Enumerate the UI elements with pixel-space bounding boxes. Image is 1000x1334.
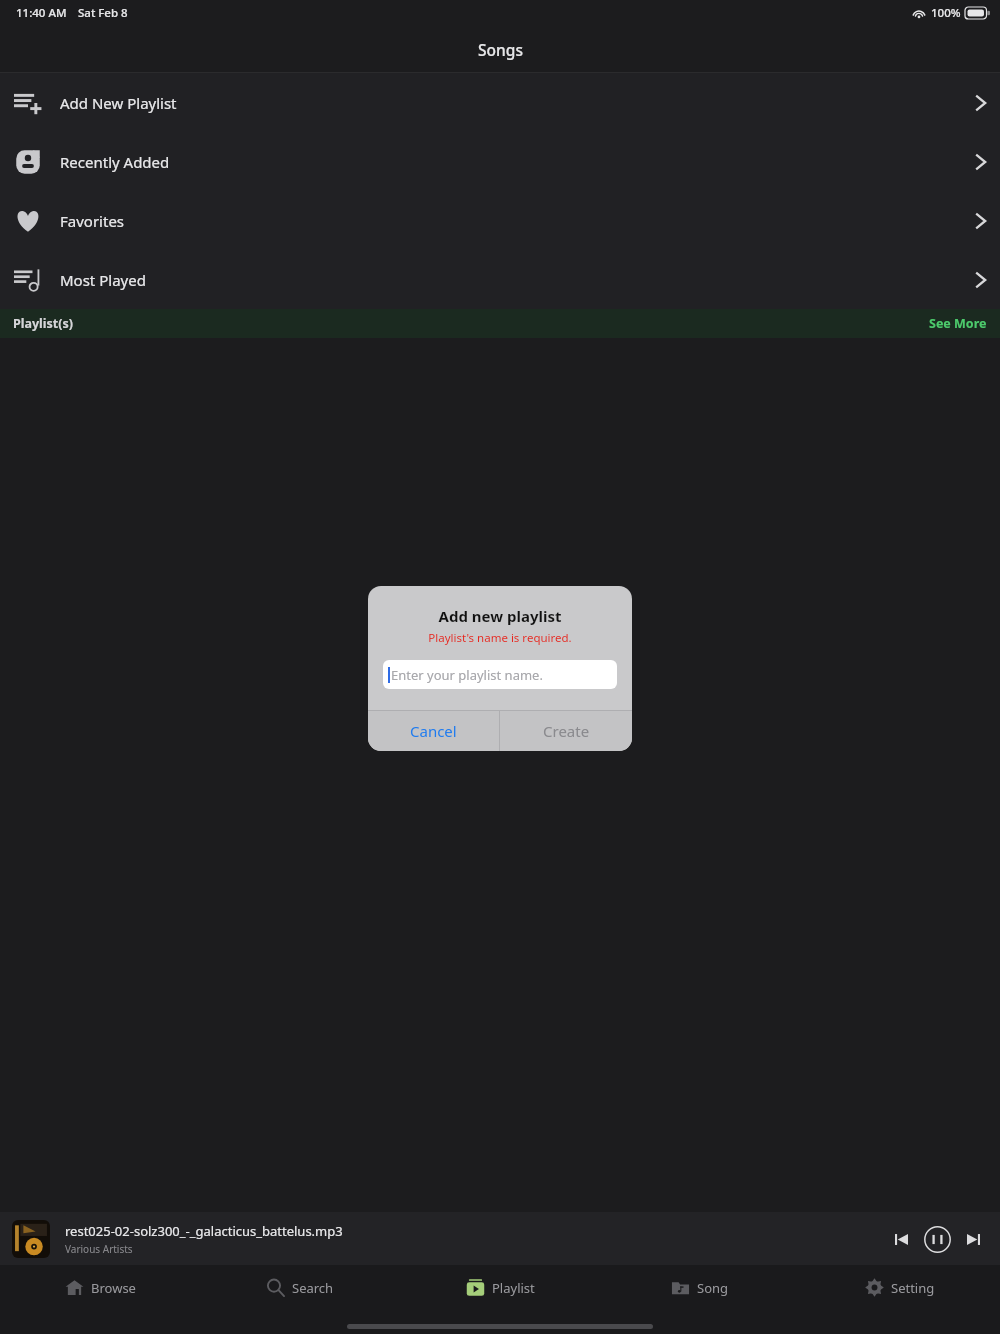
button[interactable]: Most Played (0, 250, 1000, 309)
button[interactable]: Enter your playlist name. (383, 660, 617, 689)
staticText: See More (929, 315, 987, 332)
staticText: Add New Playlist (60, 93, 177, 113)
staticText: Most Played (60, 270, 146, 290)
button[interactable]: Add New Playlist (0, 73, 1000, 132)
button[interactable]: Song (600, 1265, 800, 1310)
staticText: Cancel (410, 721, 457, 741)
button[interactable]: Setting (800, 1265, 1000, 1310)
staticText: Playlist's name is required. (368, 630, 632, 646)
staticText: Create (543, 721, 590, 741)
staticText: Playlist(s) (13, 315, 74, 332)
staticText: Favorites (60, 211, 125, 231)
staticText: Search (292, 1279, 334, 1297)
staticText: Browse (91, 1279, 136, 1297)
button[interactable]: Favorites (0, 191, 1000, 250)
staticText: 11:40 AM (16, 5, 67, 21)
staticText: Songs (478, 39, 523, 60)
staticText: 100% (931, 5, 961, 21)
button[interactable]: Browse (0, 1265, 200, 1310)
staticText: Sat Feb 8 (78, 5, 128, 21)
button[interactable]: Playlist(s) (0, 309, 1000, 338)
staticText: Enter your playlist name. (391, 666, 543, 684)
staticText: Song (697, 1279, 729, 1297)
staticText: Setting (891, 1279, 935, 1297)
staticText: Playlist (492, 1279, 535, 1297)
button[interactable]: rest025-02-solz300_-_galacticus_battelus… (0, 1212, 1000, 1265)
button[interactable]: Playlist (400, 1265, 600, 1310)
button[interactable]: Search (200, 1265, 400, 1310)
staticText: Various Artists (65, 1242, 133, 1256)
button[interactable]: Cancel (368, 711, 499, 751)
button[interactable]: Pause (922, 1224, 952, 1254)
button[interactable]: Recently Added (0, 132, 1000, 191)
staticText: rest025-02-solz300_-_galacticus_battelus… (65, 1222, 343, 1240)
button[interactable]: Create (500, 711, 632, 751)
staticText: Recently Added (60, 152, 170, 172)
staticText: Add new playlist (368, 606, 632, 626)
button[interactable]: Next (960, 1226, 986, 1252)
button[interactable]: Previous (888, 1226, 914, 1252)
